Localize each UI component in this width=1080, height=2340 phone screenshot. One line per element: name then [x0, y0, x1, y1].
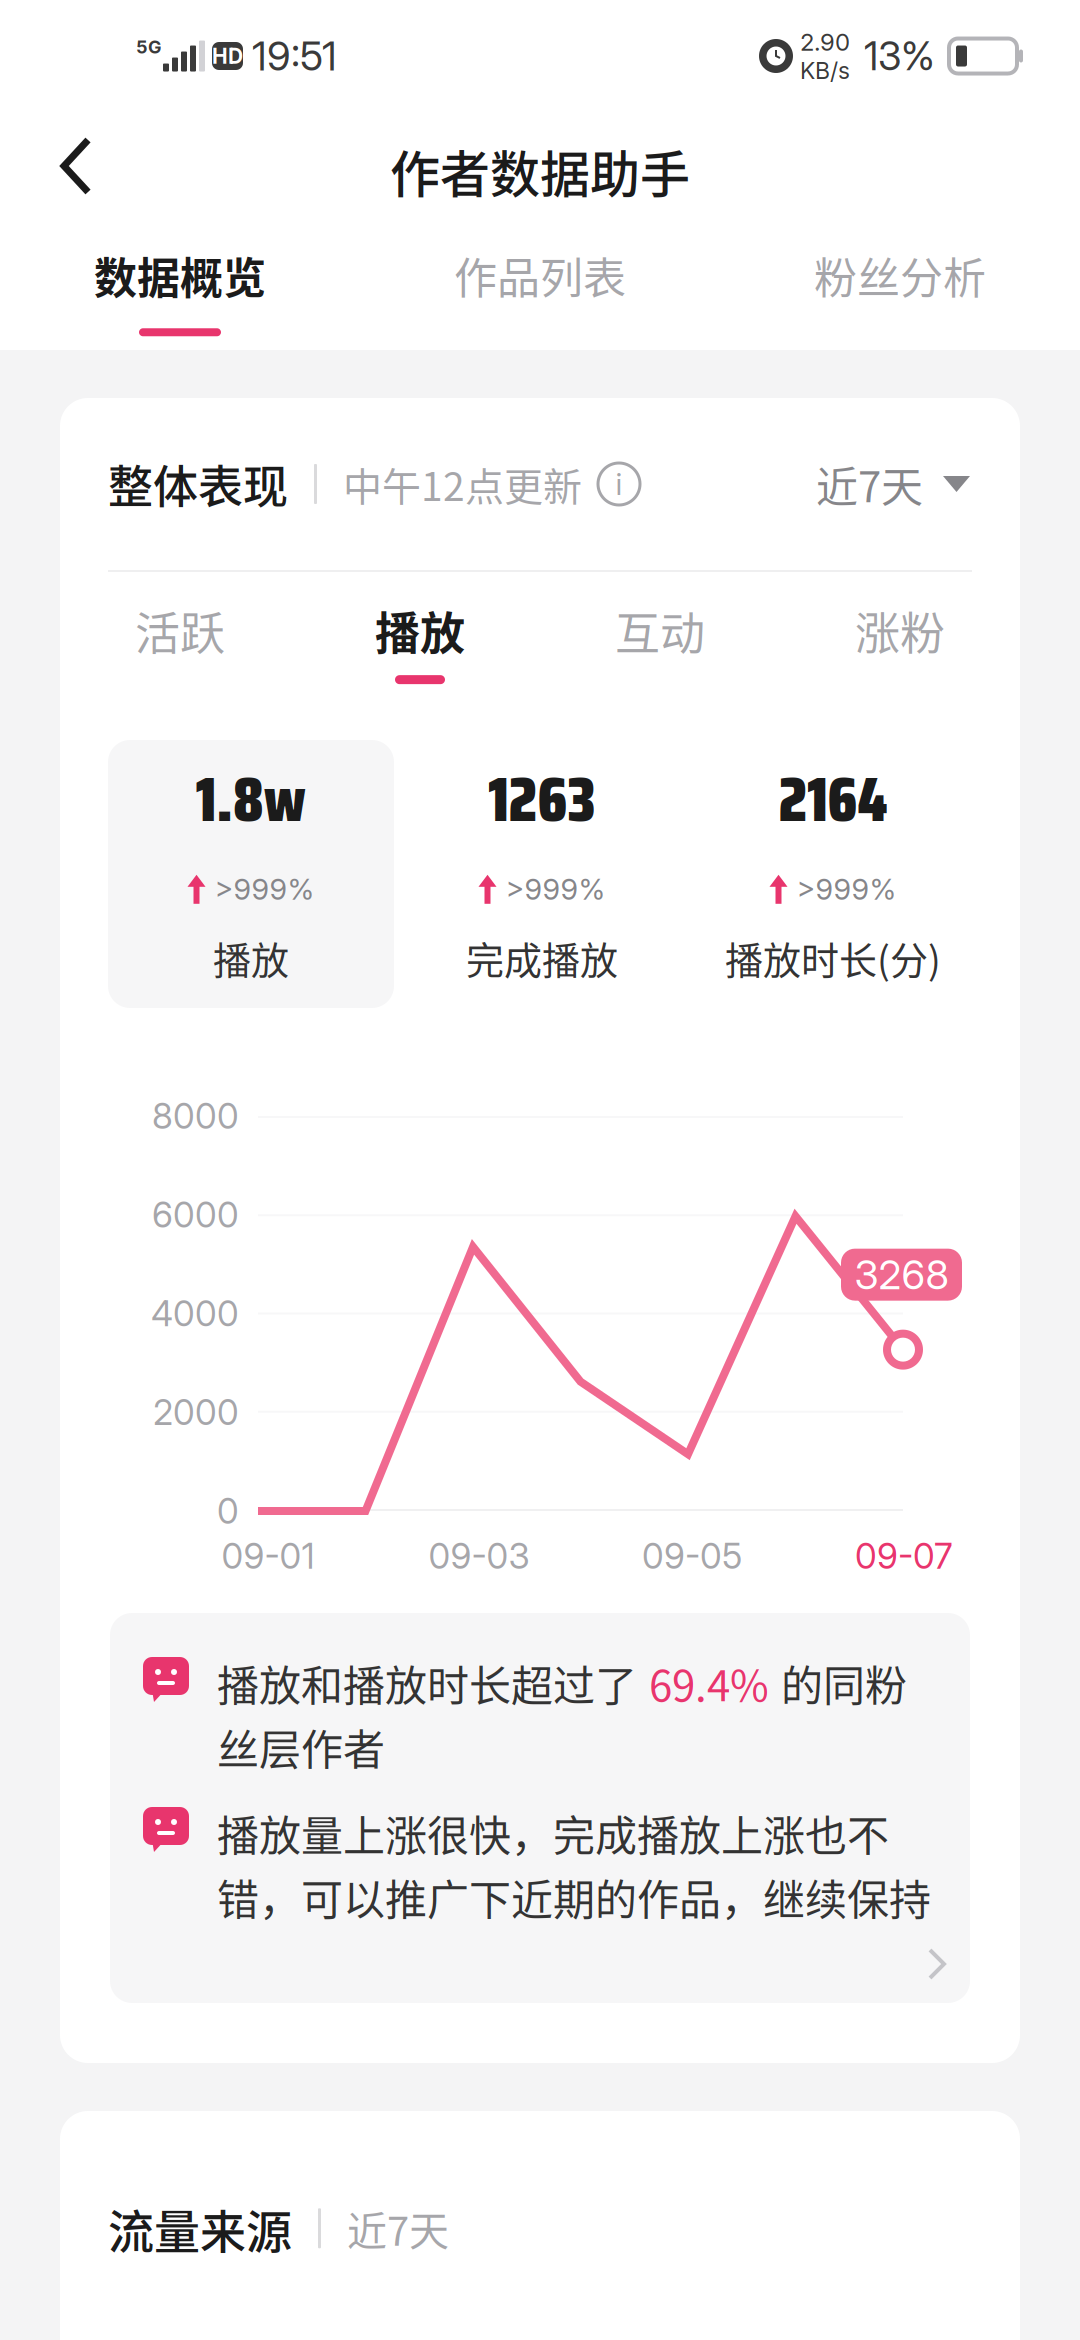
button[interactable]: 活跃	[60, 572, 300, 740]
staticText: 5G	[136, 36, 162, 58]
staticText: >999%	[505, 872, 605, 907]
button[interactable]: 1263	[399, 740, 685, 1008]
staticText: 1263	[488, 751, 595, 848]
button[interactable]: 作品列表	[360, 230, 720, 350]
button[interactable]: Back	[0, 116, 128, 226]
button[interactable]: 播放	[300, 572, 540, 740]
staticText: 粉丝分析	[814, 244, 986, 306]
staticText: 4000	[151, 1292, 239, 1335]
staticText: HD	[212, 43, 243, 69]
staticText: 2164	[778, 751, 887, 848]
staticText: 播放量上涨很快，完成播放上涨也不	[217, 1803, 889, 1863]
staticText: 近7天	[816, 454, 923, 514]
staticText: 完成播放	[466, 930, 618, 985]
staticText: 数据概览	[94, 244, 266, 306]
button[interactable]: 涨粉	[780, 572, 1020, 740]
staticText: 涨粉	[855, 598, 945, 663]
button[interactable]: 互动	[540, 572, 780, 740]
staticText: 中午12点更新	[343, 456, 582, 512]
staticText: 09-01	[221, 1535, 314, 1577]
staticText: 09-03	[428, 1535, 529, 1577]
staticText: 活跃	[135, 598, 225, 663]
staticText: 2000	[153, 1391, 239, 1433]
staticText: >999%	[214, 872, 314, 907]
staticText: 13%	[864, 32, 935, 80]
staticText: 近7天	[347, 2199, 449, 2257]
staticText: 09-05	[642, 1535, 742, 1577]
button[interactable]: 1.8w	[108, 740, 394, 1008]
button[interactable]: 数据概览	[0, 230, 360, 350]
staticText: 播放	[375, 598, 465, 663]
staticText: 作者数据助手	[390, 135, 690, 207]
staticText: 播放时长(分)	[725, 930, 941, 985]
staticText: 1.8w	[196, 751, 306, 848]
staticText: 2.90	[800, 28, 850, 57]
staticText: 的同粉	[781, 1653, 907, 1713]
staticText: 3268	[854, 1250, 948, 1299]
staticText: 互动	[615, 598, 705, 663]
staticText: 整体表现	[108, 451, 288, 517]
button[interactable]: 粉丝分析	[720, 230, 1080, 350]
button[interactable]: 2164	[690, 740, 976, 1008]
staticText: 丝层作者	[217, 1717, 385, 1777]
staticText: 错，可以推广下近期的作品，继续保持	[217, 1867, 931, 1927]
staticText: 69.4%	[649, 1653, 769, 1713]
staticText: 19:51	[252, 32, 337, 80]
staticText: 8000	[152, 1095, 239, 1137]
staticText: 流量来源	[108, 2195, 292, 2262]
button[interactable]: 近7天	[816, 454, 970, 514]
staticText: 09-07	[855, 1535, 953, 1577]
staticText: i	[615, 466, 622, 502]
staticText: 播放	[213, 930, 289, 985]
staticText: 作品列表	[454, 244, 626, 306]
staticText: 6000	[152, 1194, 239, 1236]
staticText: KB/s	[800, 57, 850, 84]
staticText: 0	[217, 1490, 239, 1532]
staticText: 播放和播放时长超过了	[217, 1653, 637, 1713]
button[interactable]: More	[904, 1925, 970, 2003]
staticText: >999%	[796, 872, 896, 907]
